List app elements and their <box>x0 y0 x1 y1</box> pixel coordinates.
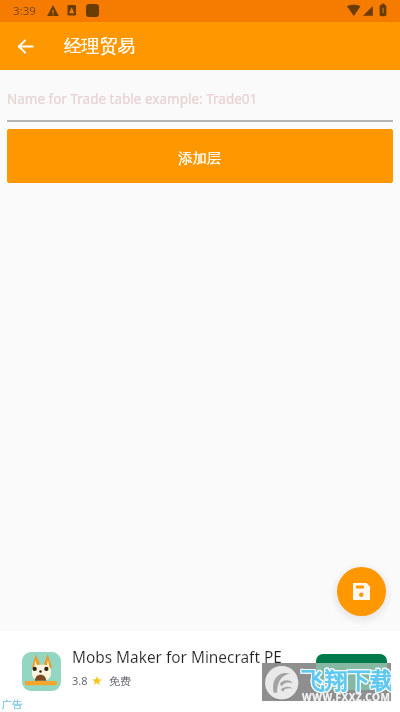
staticText: 3:39 <box>13 3 36 19</box>
staticText: Mobs Maker for Minecraft PE <box>72 647 282 668</box>
staticText: 添加层 <box>178 149 222 167</box>
button[interactable]: 添加层 <box>7 129 393 183</box>
staticText: 安装 <box>338 662 366 680</box>
staticText: 经理贸易 <box>64 35 136 57</box>
staticText: 飞翔下载 <box>301 667 391 696</box>
button[interactable]: 安装 <box>316 654 387 688</box>
button[interactable]: Back <box>9 30 41 62</box>
staticText: WWW.FXXZ.COM <box>302 690 391 701</box>
staticText: 飞翔下载 <box>302 668 391 697</box>
staticText: Name for Trade table example: Trade01 <box>7 90 258 108</box>
staticText: 免费 <box>109 674 131 688</box>
staticText: 3.8 <box>72 673 88 688</box>
staticText: 飞翔下载 <box>300 666 391 695</box>
staticText: 飞翔下载 <box>300 667 391 696</box>
button[interactable]: Save <box>337 567 386 616</box>
staticText: 飞翔下载 <box>301 666 391 695</box>
staticText: 飞翔下载 <box>302 667 391 696</box>
staticText: 飞翔下载 <box>300 668 391 697</box>
staticText: 飞翔下载 <box>301 668 391 697</box>
staticText: 飞翔下载 <box>302 666 391 695</box>
staticText: 广告 <box>2 698 22 711</box>
